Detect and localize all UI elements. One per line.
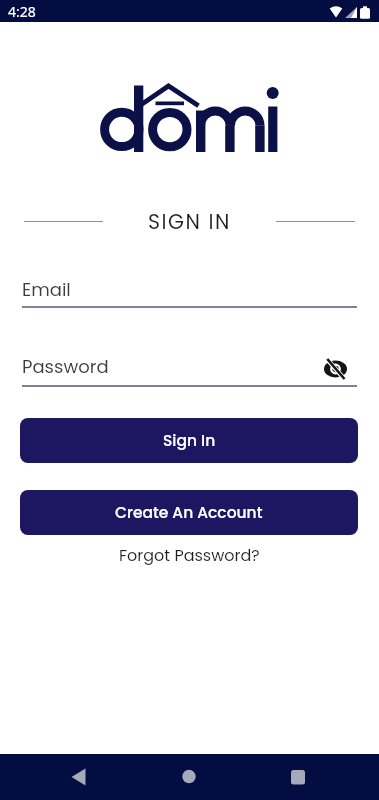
- staticText: Forgot Password?: [119, 544, 260, 566]
- button[interactable]: Forgot Password?: [119, 544, 260, 566]
- button[interactable]: [173, 760, 207, 794]
- button[interactable]: [62, 760, 96, 794]
- staticText: 4:28: [8, 2, 36, 21]
- staticText: Create An Account: [115, 502, 263, 524]
- staticText: Email: [22, 277, 71, 302]
- staticText: Password: [22, 354, 109, 379]
- button[interactable]: Password: [22, 351, 357, 387]
- button[interactable]: Create An Account: [20, 490, 358, 535]
- staticText: Sign In: [163, 430, 216, 452]
- button[interactable]: [322, 356, 349, 382]
- button[interactable]: [281, 760, 315, 794]
- button[interactable]: Sign In: [20, 418, 358, 463]
- button[interactable]: Email: [22, 270, 357, 308]
- staticText: SIGN IN: [148, 207, 231, 236]
